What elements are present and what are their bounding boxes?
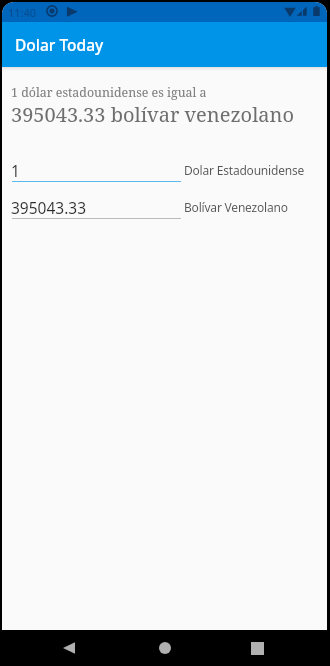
staticText: 1 dólar estadounidense es igual a: [11, 84, 207, 101]
button[interactable]: Recents: [234, 630, 281, 666]
button[interactable]: Dolar Estadounidense: [184, 159, 324, 186]
staticText: Dolar Estadounidense: [184, 162, 305, 178]
button[interactable]: Home: [141, 630, 188, 666]
button[interactable]: Bolívar Venezolano: [184, 196, 324, 223]
button[interactable]: Bolívar Venezolano: [12, 196, 181, 223]
staticText: 11:40: [8, 5, 37, 20]
staticText: 395043.33 bolívar venezolano: [11, 101, 295, 128]
staticText: Bolívar Venezolano: [184, 199, 288, 215]
staticText: Dolar Today: [15, 34, 104, 55]
staticText: 395043.33: [11, 197, 87, 218]
button[interactable]: Back: [46, 630, 93, 666]
staticText: 1: [11, 160, 20, 181]
button[interactable]: Dolar Estadounidense: [12, 159, 181, 186]
